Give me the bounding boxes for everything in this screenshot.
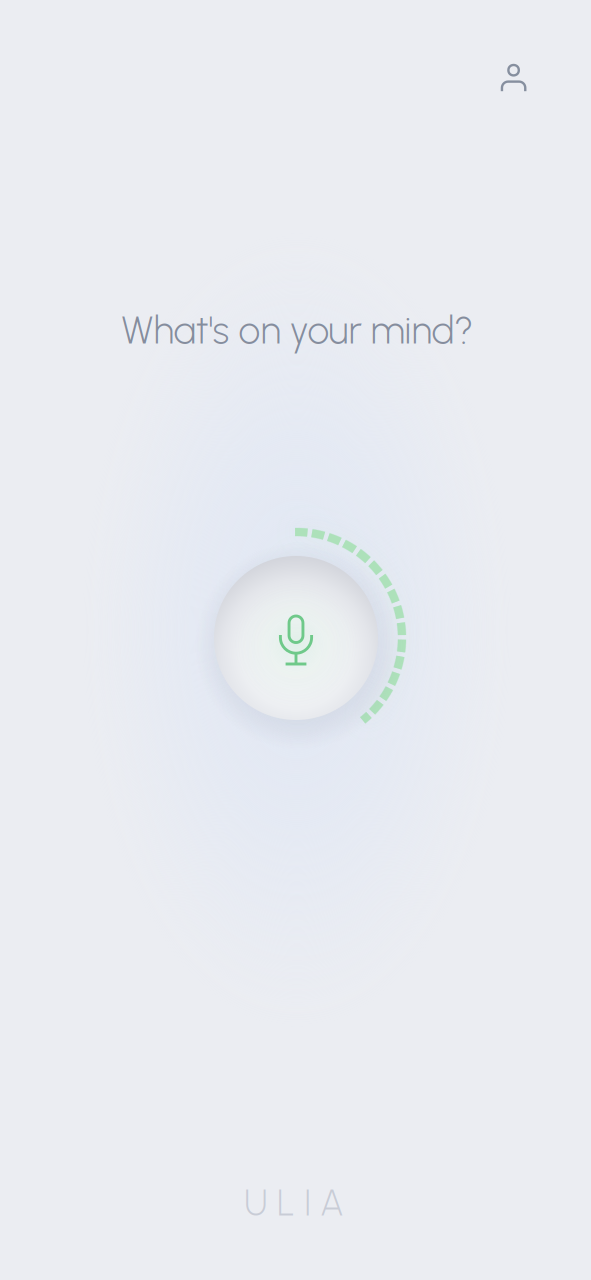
staticText: What's on your mind? (121, 307, 473, 353)
staticText: ULIA (244, 1181, 344, 1225)
button[interactable]: Start voice input (188, 530, 404, 746)
button[interactable]: Profile (486, 47, 542, 103)
